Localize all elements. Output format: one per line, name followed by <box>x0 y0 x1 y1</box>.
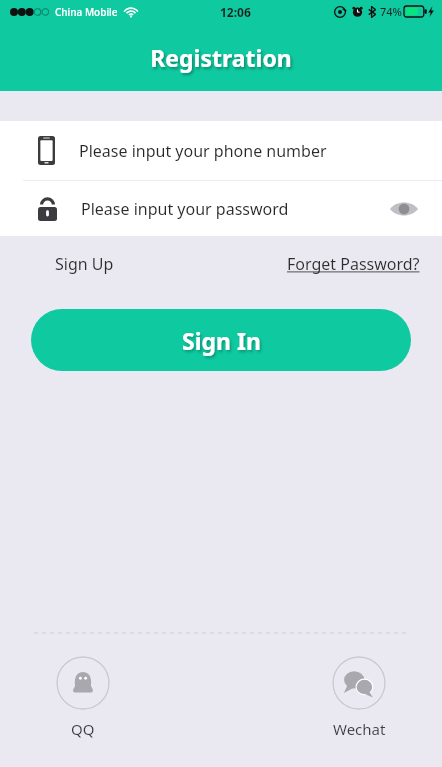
staticText: Sign In <box>182 325 261 356</box>
staticText: Please input your password <box>81 198 289 220</box>
staticText: China Mobile <box>55 5 118 19</box>
staticText: Please input your phone number <box>79 140 327 162</box>
button[interactable]: Show password <box>386 191 422 227</box>
staticText: Registration <box>150 42 292 73</box>
button[interactable]: Please input your phone number <box>0 121 442 180</box>
button[interactable]: Sign Up <box>0 247 124 281</box>
staticText: 12:06 <box>220 4 251 20</box>
staticText: 74% <box>380 4 402 19</box>
staticText: QQ <box>71 719 95 739</box>
button[interactable]: Please input your password <box>0 181 442 236</box>
button[interactable]: Forget Password? <box>277 247 442 281</box>
button[interactable]: Sign In <box>31 309 411 371</box>
staticText: Sign Up <box>55 253 114 275</box>
button[interactable]: QQ <box>48 654 118 741</box>
button[interactable]: Wechat <box>324 654 394 741</box>
staticText: Forget Password? <box>287 253 420 275</box>
staticText: Wechat <box>333 719 386 739</box>
